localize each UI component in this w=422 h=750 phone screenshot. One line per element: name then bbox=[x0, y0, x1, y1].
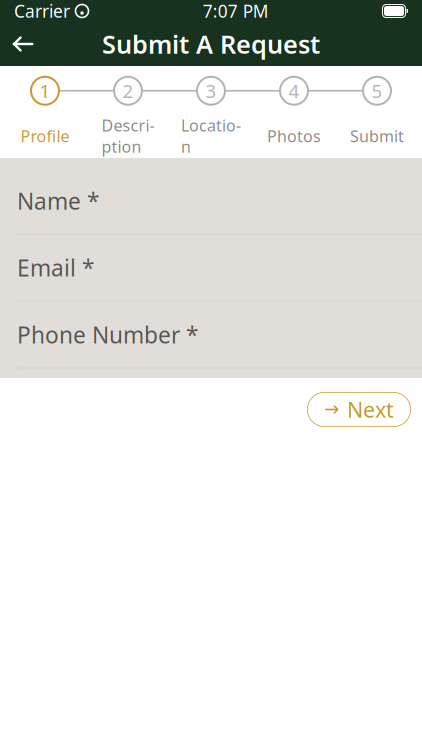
staticText: Profile bbox=[20, 125, 69, 147]
staticText: Location bbox=[181, 115, 241, 157]
button[interactable]: Description bbox=[97, 76, 159, 106]
button[interactable]: Next bbox=[307, 392, 411, 427]
staticText: 3 bbox=[205, 78, 216, 103]
staticText: 5 bbox=[371, 78, 382, 103]
staticText: Submit A Request bbox=[102, 27, 320, 61]
staticText: Photos bbox=[267, 125, 321, 147]
button[interactable]: Back bbox=[0, 22, 46, 66]
button[interactable]: Location bbox=[180, 76, 242, 106]
staticText: 2 bbox=[122, 78, 133, 103]
staticText: 4 bbox=[288, 78, 299, 103]
staticText: 1 bbox=[39, 78, 50, 103]
staticText: Carrier bbox=[14, 0, 70, 22]
button[interactable]: Email * bbox=[0, 235, 422, 302]
staticText: 7:07 PM bbox=[203, 0, 269, 22]
button[interactable]: Photos bbox=[263, 76, 325, 106]
button[interactable]: Profile bbox=[14, 76, 76, 106]
staticText: Submit bbox=[350, 125, 404, 147]
button[interactable]: Name * bbox=[0, 168, 422, 235]
staticText: Description bbox=[101, 115, 154, 157]
button[interactable]: Submit bbox=[346, 76, 408, 106]
staticText: Email * bbox=[17, 253, 94, 283]
staticText: Name * bbox=[17, 186, 99, 216]
staticText: Phone Number * bbox=[17, 319, 198, 350]
staticText: Next bbox=[347, 395, 394, 424]
button[interactable]: Phone Number * bbox=[0, 302, 422, 368]
